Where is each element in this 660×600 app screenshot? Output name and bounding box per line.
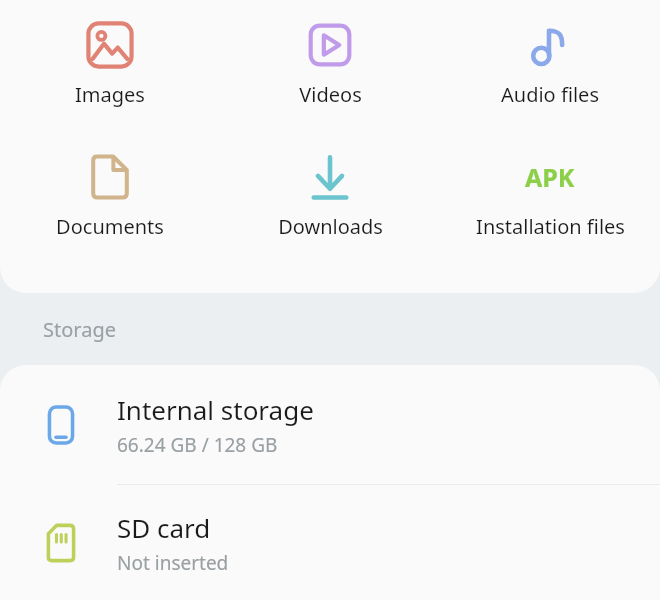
button[interactable]: Downloads [220, 132, 440, 264]
staticText: Internal storage [117, 392, 314, 427]
staticText: Videos [299, 81, 362, 108]
other: Videos [302, 17, 358, 73]
button[interactable]: SD card [0, 485, 660, 600]
button[interactable]: Images [0, 0, 220, 132]
staticText: Audio files [501, 81, 599, 108]
staticText: Installation files [476, 213, 625, 240]
other: Downloads [302, 149, 358, 205]
button[interactable]: Videos [220, 0, 440, 132]
other: SD card [40, 522, 82, 564]
staticText: Storage [43, 316, 116, 343]
button[interactable]: Internal storage [0, 365, 660, 484]
staticText: Not inserted [117, 550, 229, 576]
staticText: SD card [117, 510, 211, 545]
other: Images [82, 17, 138, 73]
other: Installation files [522, 149, 578, 205]
other: Audio files [522, 17, 578, 73]
button[interactable]: Installation files [440, 132, 660, 264]
other: Documents [82, 149, 138, 205]
staticText: APK [525, 160, 575, 194]
button[interactable]: Documents [0, 132, 220, 264]
staticText: 66.24 GB / 128 GB [117, 432, 278, 458]
button[interactable]: Audio files [440, 0, 660, 132]
staticText: Images [75, 81, 145, 108]
staticText: Documents [56, 213, 164, 240]
staticText: Downloads [278, 213, 383, 240]
other: Internal storage [40, 404, 82, 446]
